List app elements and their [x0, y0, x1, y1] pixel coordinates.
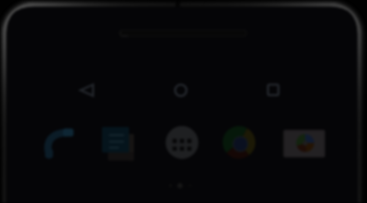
button[interactable]: Messaging	[94, 121, 139, 166]
button[interactable]: Home	[161, 72, 201, 108]
button[interactable]: Phone	[36, 121, 81, 166]
button[interactable]: Recent apps	[253, 72, 293, 108]
button[interactable]: Chrome	[217, 121, 262, 166]
button[interactable]: Apps	[160, 121, 205, 166]
button[interactable]: Camera	[282, 121, 327, 166]
button[interactable]: Back	[68, 72, 108, 108]
